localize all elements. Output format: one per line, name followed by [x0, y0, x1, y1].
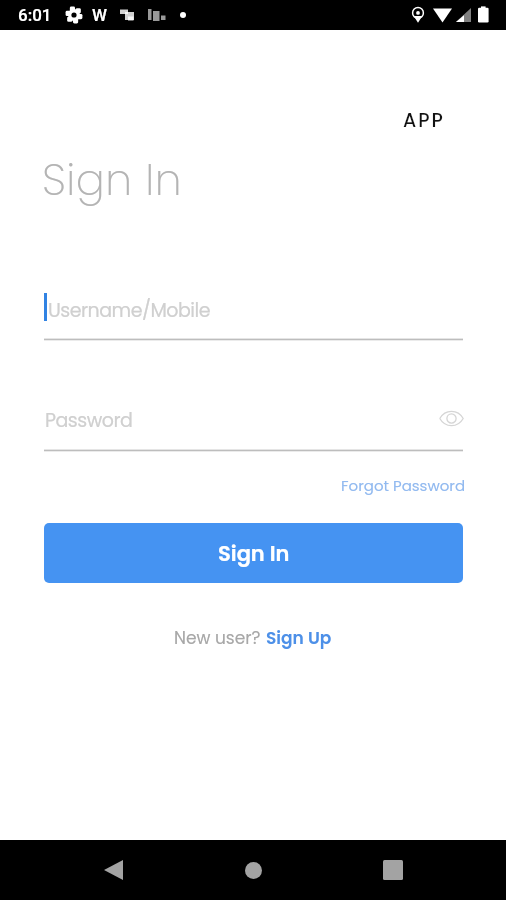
staticText: Username/Mobile	[48, 297, 210, 324]
button[interactable]: APP	[403, 107, 445, 134]
button[interactable]: Password	[44, 399, 463, 450]
staticText: Sign Up	[266, 626, 332, 650]
staticText: APP	[403, 107, 445, 134]
button[interactable]: Home	[228, 845, 278, 895]
button[interactable]: Sign In	[44, 523, 463, 583]
staticText: Forgot Password	[341, 475, 466, 496]
staticText: Sign In	[218, 539, 290, 568]
staticText: 6:01	[18, 5, 52, 25]
button[interactable]: Recents	[368, 845, 418, 895]
staticText: W	[92, 5, 107, 25]
button[interactable]: Back	[88, 845, 138, 895]
button[interactable]: Username/Mobile	[44, 288, 463, 339]
staticText: New user?	[174, 626, 266, 650]
staticText: Password	[45, 407, 133, 434]
button[interactable]: Forgot Password	[341, 475, 466, 496]
button[interactable]: Show password	[433, 403, 469, 433]
staticText: Sign In	[42, 150, 183, 210]
button[interactable]: Sign Up	[266, 626, 332, 650]
